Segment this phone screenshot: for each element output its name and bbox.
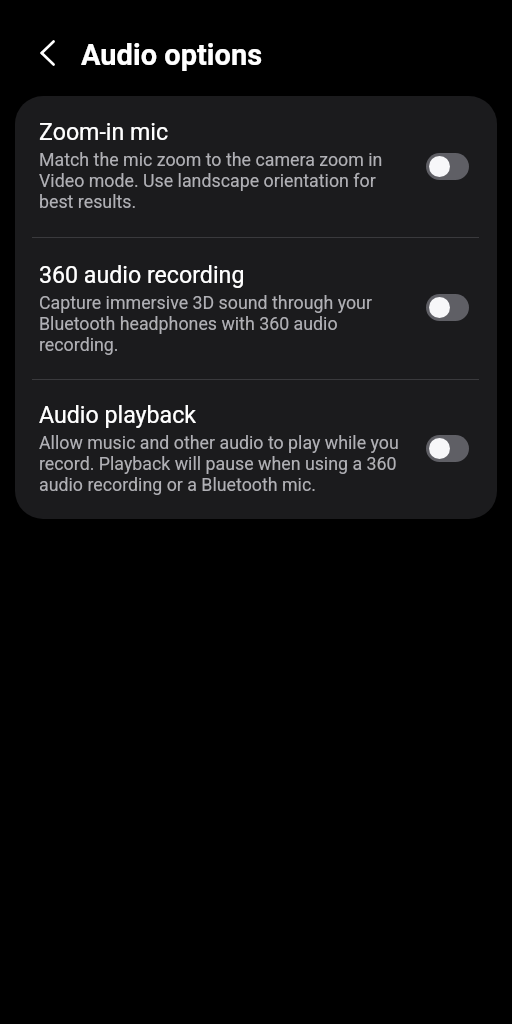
button[interactable]: Toggle (426, 153, 469, 180)
button[interactable]: Toggle (426, 435, 469, 462)
button[interactable]: Audio playback (15, 380, 497, 519)
staticText: Zoom-in mic (39, 118, 169, 145)
staticText: Match the mic zoom to the camera zoom in… (39, 149, 383, 212)
button[interactable]: Toggle (426, 294, 469, 321)
button[interactable]: Back (23, 33, 63, 73)
staticText: Audio options (81, 38, 263, 72)
staticText: Capture immersive 3D sound through your … (39, 292, 372, 355)
staticText: 360 audio recording (39, 261, 245, 288)
button[interactable]: Zoom-in mic (15, 96, 497, 237)
button[interactable]: 360 audio recording (15, 238, 497, 379)
staticText: Allow music and other audio to play whil… (39, 432, 399, 495)
staticText: Audio playback (39, 401, 197, 428)
